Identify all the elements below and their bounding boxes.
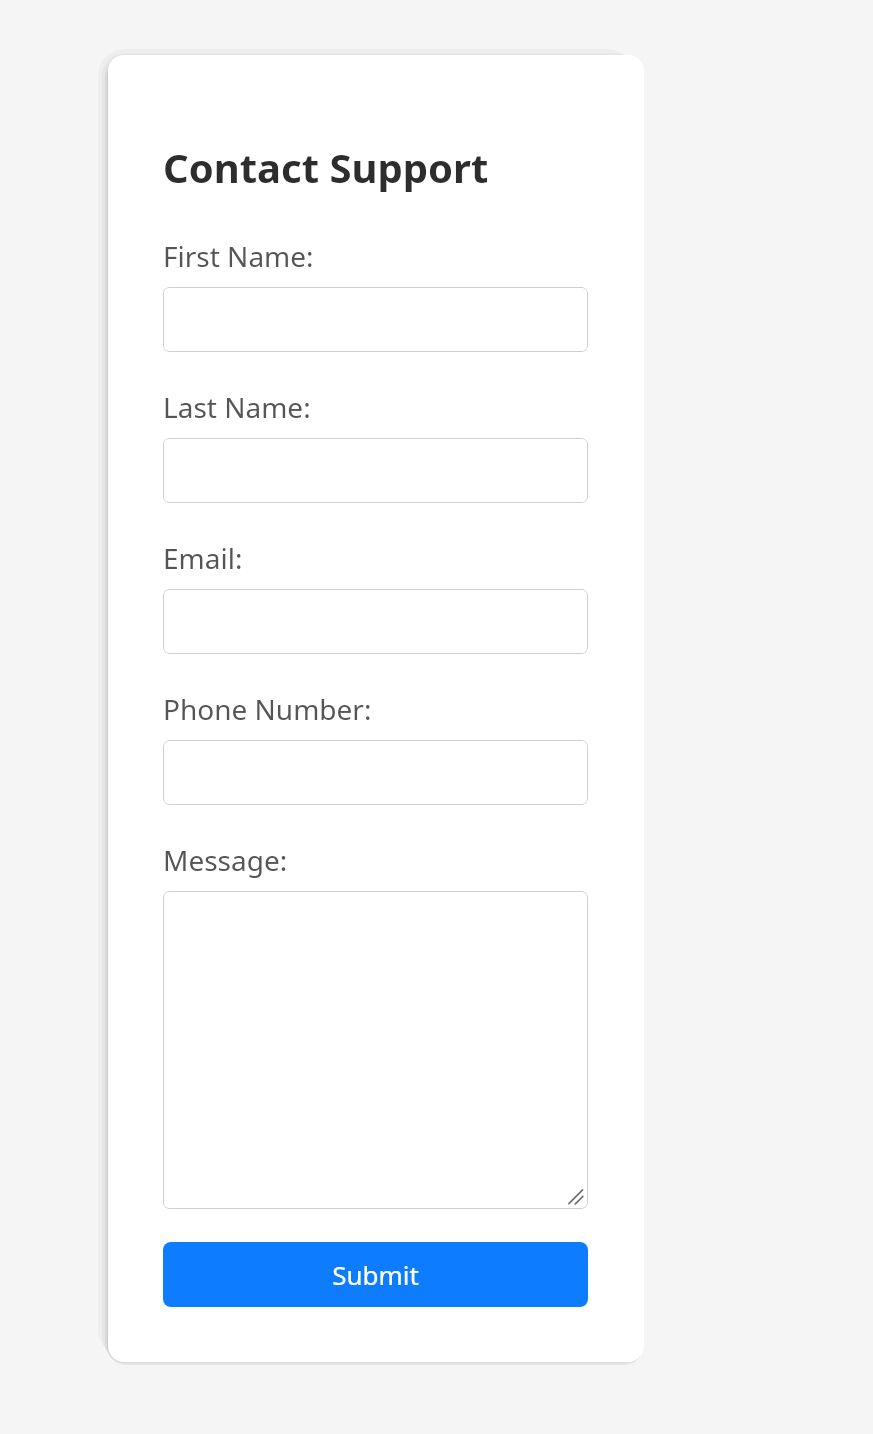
staticText: Submit: [332, 1257, 419, 1292]
staticText: First Name:: [163, 237, 314, 275]
button[interactable]: Submit: [163, 1242, 588, 1307]
staticText: Last Name:: [163, 388, 311, 426]
staticText: Contact Support: [163, 140, 489, 194]
button[interactable]: [163, 740, 588, 805]
staticText: Message:: [163, 841, 288, 879]
button[interactable]: Resize message field: [163, 891, 588, 1209]
staticText: Email:: [163, 539, 243, 577]
button[interactable]: [163, 287, 588, 352]
button[interactable]: [163, 438, 588, 503]
staticText: Phone Number:: [163, 690, 372, 728]
button[interactable]: [163, 589, 588, 654]
other: Resize message field: [566, 1187, 584, 1205]
